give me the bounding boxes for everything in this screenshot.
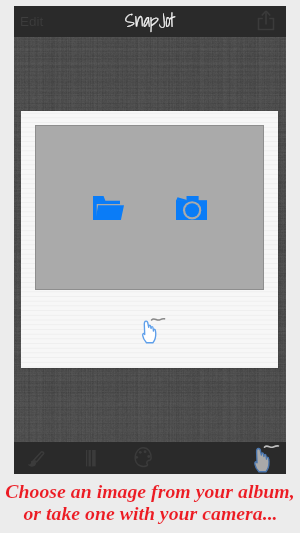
button[interactable]: Edit [14, 6, 60, 37]
button[interactable]: Choose an image from your album [87, 190, 130, 226]
button[interactable]: Brush [19, 442, 53, 474]
button[interactable]: Gestures [248, 442, 286, 474]
staticText: or take one with your camera... [23, 502, 278, 524]
staticText: SnapJot [125, 6, 176, 35]
staticText: Edit [20, 14, 44, 29]
staticText: Choose an image from your album, [5, 480, 295, 502]
button[interactable]: Share [250, 6, 286, 37]
button[interactable]: Palette [126, 442, 160, 474]
button[interactable]: Take one with your camera [170, 190, 213, 226]
button[interactable]: Line width [73, 442, 107, 474]
